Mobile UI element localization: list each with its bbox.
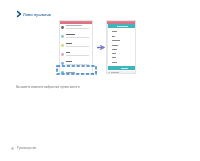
staticText: Вы можете изменить выбранные пункты меню… (16, 85, 82, 89)
button[interactable] (106, 20, 136, 24)
button[interactable] (59, 60, 93, 69)
button[interactable] (108, 47, 135, 51)
other: Next (17, 11, 21, 17)
button[interactable] (59, 33, 93, 42)
button[interactable] (108, 43, 135, 47)
button[interactable] (59, 51, 93, 60)
button[interactable] (108, 55, 135, 59)
button[interactable] (59, 42, 93, 51)
button[interactable] (108, 38, 135, 42)
button[interactable] (59, 20, 93, 24)
button[interactable] (108, 51, 135, 55)
button[interactable] (108, 24, 135, 28)
staticText: Лови пушкина (23, 12, 52, 17)
button[interactable] (108, 29, 135, 33)
button[interactable]: Next (16, 11, 52, 17)
button[interactable] (106, 71, 136, 74)
button[interactable] (108, 66, 135, 70)
button[interactable] (108, 34, 135, 38)
other: Arrow (97, 45, 104, 50)
button[interactable] (59, 70, 93, 74)
staticText: Руководство (17, 146, 37, 150)
button[interactable] (59, 24, 93, 33)
button[interactable] (108, 60, 135, 64)
